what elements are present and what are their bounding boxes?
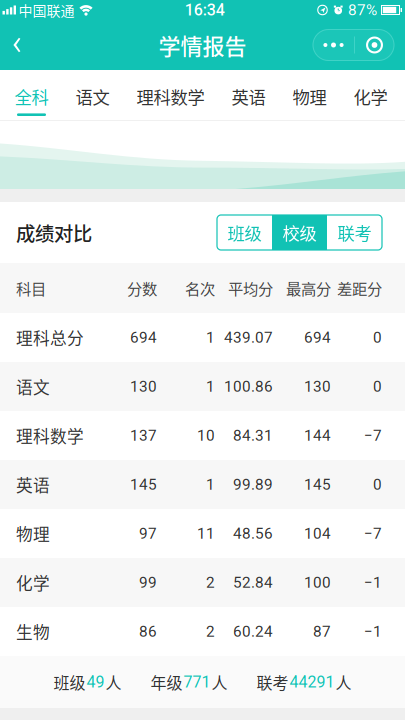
staticText: 分数 xyxy=(127,277,157,299)
staticText: 97 xyxy=(139,524,157,542)
staticText: −1 xyxy=(364,573,382,591)
staticText: 137 xyxy=(130,426,157,444)
staticText: 0 xyxy=(373,377,382,395)
staticText: 87% xyxy=(348,1,377,19)
staticText: 联考 xyxy=(337,220,371,245)
staticText: 104 xyxy=(304,524,331,542)
staticText: 科目 xyxy=(16,277,46,299)
staticText: 班级 xyxy=(53,670,85,694)
staticText: 英语 xyxy=(16,472,50,496)
staticText: 1 xyxy=(206,475,215,493)
staticText: 144 xyxy=(304,426,331,444)
staticText: 年级 xyxy=(150,670,182,694)
staticText: 校级 xyxy=(282,220,316,245)
button[interactable]: 返回 xyxy=(0,22,33,68)
staticText: 最高分 xyxy=(286,277,331,299)
button[interactable]: 化学 xyxy=(340,70,401,121)
button[interactable]: 校级 xyxy=(272,215,327,250)
staticText: 99 xyxy=(139,573,157,591)
button[interactable]: 理科数学 xyxy=(123,70,218,121)
staticText: 2 xyxy=(206,622,215,640)
staticText: 86 xyxy=(139,622,157,640)
staticText: 16:34 xyxy=(185,1,225,19)
staticText: 439.07 xyxy=(224,328,273,346)
staticText: 化学 xyxy=(353,84,387,109)
button[interactable]: 班级 xyxy=(217,215,272,250)
staticText: 化学 xyxy=(16,570,50,594)
staticText: 全科 xyxy=(14,84,48,109)
staticText: 84.31 xyxy=(233,426,273,444)
staticText: 11 xyxy=(197,524,215,542)
button[interactable]: 英语 xyxy=(218,70,279,121)
staticText: 理科数学 xyxy=(16,423,84,447)
staticText: 英语 xyxy=(231,84,265,109)
staticText: 2 xyxy=(206,573,215,591)
button[interactable]: 联考 xyxy=(327,215,382,250)
staticText: 130 xyxy=(130,377,157,395)
staticText: 0 xyxy=(373,328,382,346)
button[interactable]: 语文 xyxy=(62,70,123,121)
button[interactable]: 更多 xyxy=(313,29,354,60)
staticText: 44291 xyxy=(289,673,334,691)
staticText: 1 xyxy=(206,377,215,395)
staticText: 学情报告 xyxy=(158,29,246,61)
staticText: 平均分 xyxy=(228,277,273,299)
staticText: −7 xyxy=(364,524,382,542)
staticText: 班级 xyxy=(227,220,261,245)
staticText: 60.24 xyxy=(233,622,273,640)
staticText: 语文 xyxy=(75,84,109,109)
staticText: 100 xyxy=(304,573,331,591)
staticText: 694 xyxy=(304,328,331,346)
staticText: 成绩对比 xyxy=(16,218,92,246)
staticText: 差距分 xyxy=(337,277,382,299)
staticText: 49 xyxy=(86,673,104,691)
staticText: 理科总分 xyxy=(16,325,84,349)
staticText: 87 xyxy=(313,622,331,640)
staticText: 99.89 xyxy=(233,475,273,493)
staticText: −7 xyxy=(364,426,382,444)
staticText: 物理 xyxy=(292,84,326,109)
staticText: 10 xyxy=(197,426,215,444)
staticText: 联考 xyxy=(256,670,288,694)
staticText: 130 xyxy=(304,377,331,395)
staticText: 人 xyxy=(105,670,121,694)
staticText: 0 xyxy=(373,475,382,493)
staticText: 中国联通 xyxy=(18,0,74,20)
staticText: 物理 xyxy=(16,521,50,545)
staticText: 100.86 xyxy=(224,377,273,395)
staticText: 52.84 xyxy=(233,573,273,591)
staticText: 145 xyxy=(130,475,157,493)
staticText: 人 xyxy=(335,670,351,694)
button[interactable]: 全科 xyxy=(1,70,62,121)
staticText: 145 xyxy=(304,475,331,493)
staticText: 名次 xyxy=(185,277,215,299)
button[interactable]: 物理 xyxy=(279,70,340,121)
staticText: 1 xyxy=(206,328,215,346)
staticText: 生物 xyxy=(16,619,50,643)
staticText: 694 xyxy=(130,328,157,346)
staticText: 理科数学 xyxy=(136,84,204,109)
staticText: 语文 xyxy=(16,374,50,398)
staticText: −1 xyxy=(364,622,382,640)
staticText: 48.56 xyxy=(233,524,273,542)
staticText: 771 xyxy=(183,673,210,691)
button[interactable]: 关闭 xyxy=(355,29,394,60)
staticText: 人 xyxy=(211,670,227,694)
